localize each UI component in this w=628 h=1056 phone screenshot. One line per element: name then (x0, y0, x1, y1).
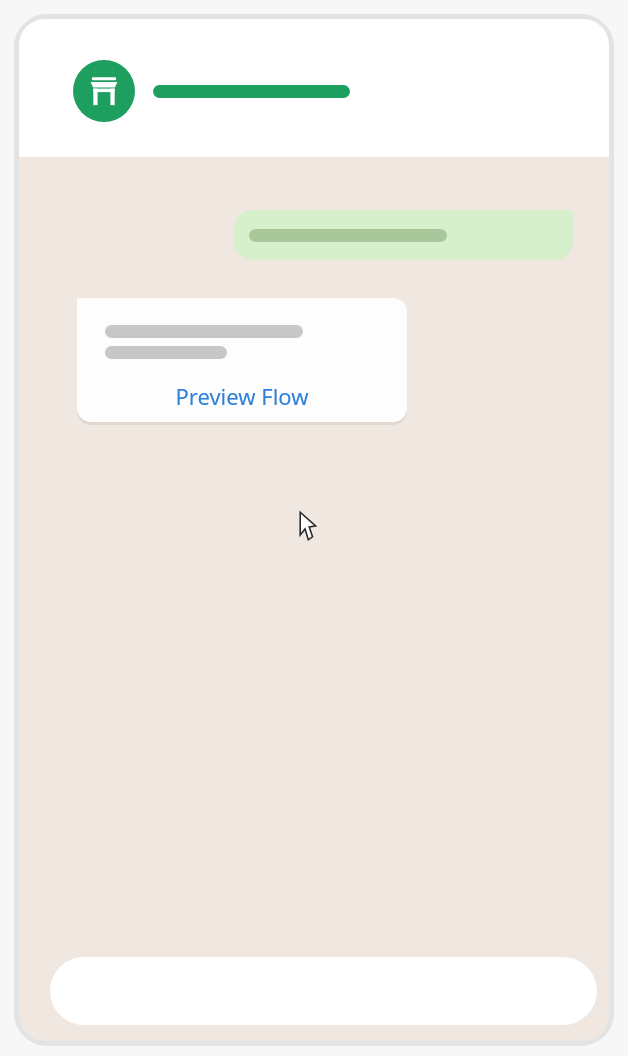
staticText: Preview Flow (175, 381, 309, 411)
button[interactable]: Preview Flow (77, 374, 407, 418)
button[interactable]: Message input field (50, 957, 597, 1025)
button[interactable]: Store profile (73, 60, 135, 122)
button[interactable] (234, 210, 573, 260)
button[interactable]: Preview Flow (77, 298, 407, 422)
